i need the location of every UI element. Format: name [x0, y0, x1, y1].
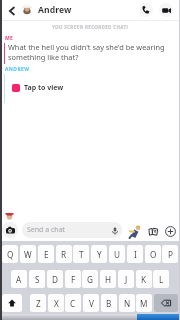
staticText: J — [125, 274, 128, 285]
staticText: L — [159, 274, 164, 285]
staticText: G — [87, 274, 93, 285]
button[interactable]: Stickers — [146, 224, 160, 238]
button[interactable]: Audio call — [139, 3, 153, 17]
staticText: ME — [5, 35, 14, 42]
button[interactable]: L — [153, 270, 169, 288]
staticText: D — [52, 274, 58, 285]
button[interactable]: F — [65, 270, 81, 288]
staticText: N — [124, 298, 131, 309]
staticText: X — [54, 298, 59, 309]
button[interactable]: J — [118, 270, 134, 288]
button[interactable]: I — [127, 245, 143, 263]
button[interactable]: Camera — [2, 222, 18, 238]
staticText: R — [61, 249, 67, 260]
button[interactable]: T — [73, 245, 89, 263]
button[interactable]: R — [56, 245, 72, 263]
button[interactable]: O — [145, 245, 161, 263]
staticText: I — [134, 249, 137, 260]
staticText: V — [89, 298, 94, 309]
button[interactable]: Bitmoji sticker — [126, 223, 142, 239]
button[interactable]: More options — [163, 224, 177, 238]
button[interactable]: Back — [4, 3, 19, 18]
button[interactable]: M — [136, 294, 152, 312]
staticText: C — [70, 298, 76, 309]
button[interactable]: Backspace — [154, 294, 178, 312]
button[interactable]: G — [82, 270, 98, 288]
button[interactable]: Q — [2, 245, 18, 263]
staticText: Andrew — [38, 4, 72, 16]
staticText: Send a chat — [27, 225, 66, 235]
button[interactable]: B — [101, 294, 117, 312]
staticText: K — [141, 274, 147, 285]
button[interactable]: Z — [30, 294, 46, 312]
button[interactable]: D — [47, 270, 63, 288]
button[interactable]: S — [29, 270, 45, 288]
staticText: O — [150, 249, 157, 260]
staticText: ANDREW — [5, 66, 30, 73]
staticText: P — [168, 249, 173, 260]
button[interactable]: P — [162, 245, 178, 263]
button[interactable]: U — [109, 245, 125, 263]
staticText: W — [24, 249, 32, 260]
button[interactable]: W — [20, 245, 36, 263]
staticText: Y — [97, 249, 102, 260]
button[interactable]: H — [100, 270, 116, 288]
staticText: T — [79, 249, 84, 260]
staticText: E — [44, 249, 49, 260]
button[interactable]: N — [119, 294, 135, 312]
staticText: H — [105, 274, 112, 285]
button[interactable]: C — [65, 294, 81, 312]
button[interactable]: Tap to view — [0, 81, 180, 95]
button[interactable]: Shift — [2, 294, 22, 312]
staticText: M — [140, 298, 148, 309]
staticText: Tap to view — [24, 83, 64, 93]
staticText: Z — [36, 298, 41, 309]
staticText: B — [106, 298, 112, 309]
button[interactable]: Video call — [159, 3, 173, 17]
button[interactable]: A — [11, 270, 27, 288]
button[interactable]: V — [83, 294, 99, 312]
staticText: U — [114, 249, 120, 260]
staticText: Q — [7, 249, 14, 260]
button[interactable]: X — [48, 294, 64, 312]
staticText: A — [16, 274, 22, 285]
button[interactable]: K — [136, 270, 152, 288]
button[interactable]: Voice note — [109, 225, 120, 236]
staticText: What the hell you didn't say she'd be we… — [8, 42, 165, 62]
staticText: F — [71, 274, 76, 285]
button[interactable]: Y — [91, 245, 107, 263]
staticText: YOU SCREEN RECORDED CHAT! — [0, 24, 180, 30]
staticText: S — [35, 274, 40, 285]
button[interactable]: Send a chat — [22, 222, 122, 238]
button[interactable]: E — [38, 245, 54, 263]
